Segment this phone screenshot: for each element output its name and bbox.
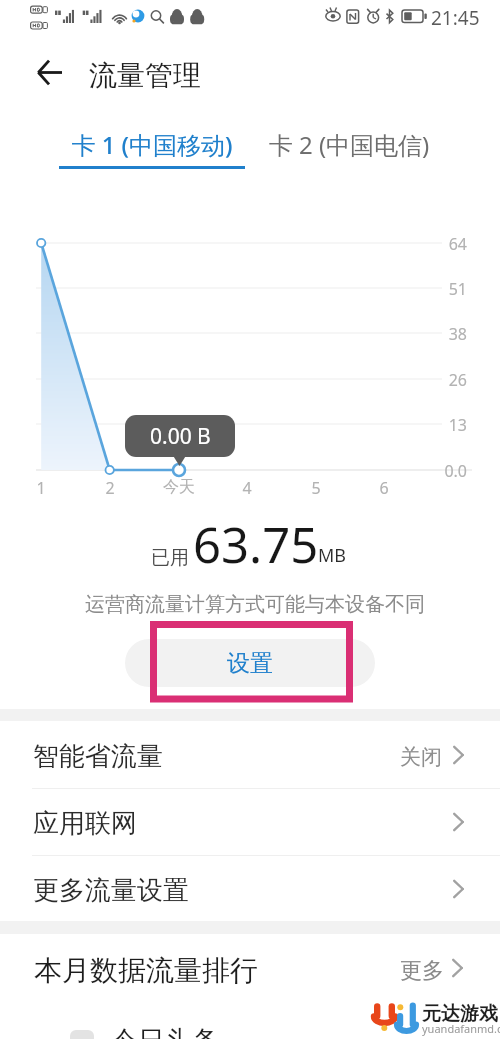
staticText: 5 (291, 477, 341, 499)
button[interactable]: 更多流量设置 (0, 855, 500, 922)
staticText: 4 (222, 477, 272, 499)
button[interactable]: 智能省流量 (0, 721, 500, 788)
staticText: MB (318, 543, 347, 568)
button[interactable]: 本月数据流量排行 (0, 934, 500, 1001)
staticText: 38 (427, 323, 467, 345)
staticText: 应用联网 (33, 807, 137, 840)
staticText: 0.00 B (150, 422, 211, 451)
staticText: 21:45 (431, 5, 480, 31)
staticText: 26 (427, 369, 467, 391)
button[interactable]: 设置 (125, 639, 375, 687)
staticText: 运营商流量计算方式可能与本设备不同 (85, 592, 425, 617)
staticText: 卡 1 (中国移动) (46, 128, 258, 161)
staticText: 0.0 (427, 460, 467, 482)
staticText: 更多 (400, 957, 444, 985)
staticText: 智能省流量 (33, 740, 163, 773)
staticText: 1 (16, 477, 66, 499)
staticText: 今日头条 (111, 1024, 219, 1039)
staticText: 卡 2 (中国电信) (259, 128, 439, 161)
staticText: 6 (359, 477, 409, 499)
staticText: yuandafanmd.com (422, 1021, 500, 1036)
staticText: 64 (427, 233, 467, 255)
staticText: 关闭 (400, 744, 442, 770)
button[interactable]: 卡 2 (中国电信) (259, 120, 439, 164)
button[interactable]: 卡 1 (中国移动) (46, 120, 258, 176)
staticText: 63.75 (193, 511, 319, 578)
staticText: 已用 (151, 546, 189, 570)
staticText: 本月数据流量排行 (34, 953, 258, 988)
button[interactable]: 应用联网 (0, 788, 500, 855)
staticText: 设置 (227, 649, 273, 678)
staticText: 元达游戏 (422, 1002, 498, 1026)
staticText: 13 (427, 414, 467, 436)
staticText: 流量管理 (89, 58, 201, 93)
staticText: 更多流量设置 (33, 874, 189, 907)
staticText: 2 (85, 477, 135, 499)
staticText: 今天 (154, 477, 204, 497)
staticText: 51 (427, 278, 467, 300)
button[interactable]: Back (24, 47, 75, 98)
